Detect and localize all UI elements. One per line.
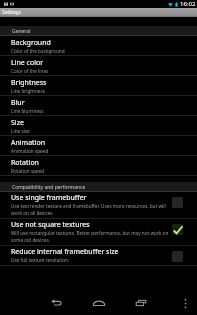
- button[interactable]: Use single framebuffer: [0, 192, 197, 219]
- button[interactable]: Animation: [0, 136, 197, 156]
- staticText: General: [12, 28, 31, 35]
- staticText: Use not square textures: [11, 220, 90, 230]
- staticText: Size: [11, 118, 24, 128]
- staticText: Line brightness: [11, 88, 45, 94]
- staticText: Use single framebuffer: [11, 193, 87, 203]
- staticText: Line blurriness: [11, 108, 44, 114]
- staticText: Settings: [2, 9, 22, 16]
- staticText: Animation: [11, 138, 45, 148]
- button[interactable]: Line color: [0, 56, 197, 76]
- staticText: Line size: [11, 128, 30, 134]
- staticText: Use full texture resolution.: [11, 257, 70, 263]
- staticText: Compatibility and performance: [12, 184, 86, 191]
- button[interactable]: Back: [43, 290, 69, 315]
- button[interactable]: Rotation: [0, 156, 197, 176]
- button[interactable]: Recent apps: [128, 290, 154, 315]
- button[interactable]: Use not square textures: [0, 219, 197, 246]
- button[interactable]: Brightness: [0, 76, 197, 96]
- staticText: Blur: [11, 98, 25, 108]
- button[interactable]: Background: [0, 36, 197, 56]
- button[interactable]: Reduce internal framebuffer size: [0, 246, 197, 266]
- staticText: Rotation speed: [11, 168, 45, 174]
- staticText: Use two render texture and framebuffer. …: [11, 203, 166, 217]
- button[interactable]: Blur: [0, 96, 197, 116]
- staticText: Background: [11, 38, 51, 48]
- staticText: Color of the lines: [11, 68, 49, 74]
- staticText: Rotation: [11, 158, 39, 168]
- staticText: Brightness: [11, 78, 47, 88]
- button[interactable]: Size: [0, 116, 197, 136]
- button[interactable]: Home: [86, 290, 112, 315]
- staticText: Line color: [11, 58, 44, 68]
- staticText: Reduce internal framebuffer size: [11, 247, 119, 257]
- staticText: Color of the background: [11, 48, 65, 54]
- staticText: Will use rectangular textures. Better pe…: [11, 230, 169, 244]
- button[interactable]: More options: [175, 293, 195, 313]
- staticText: Animation speed: [11, 148, 49, 154]
- staticText: 16:02: [180, 0, 196, 8]
